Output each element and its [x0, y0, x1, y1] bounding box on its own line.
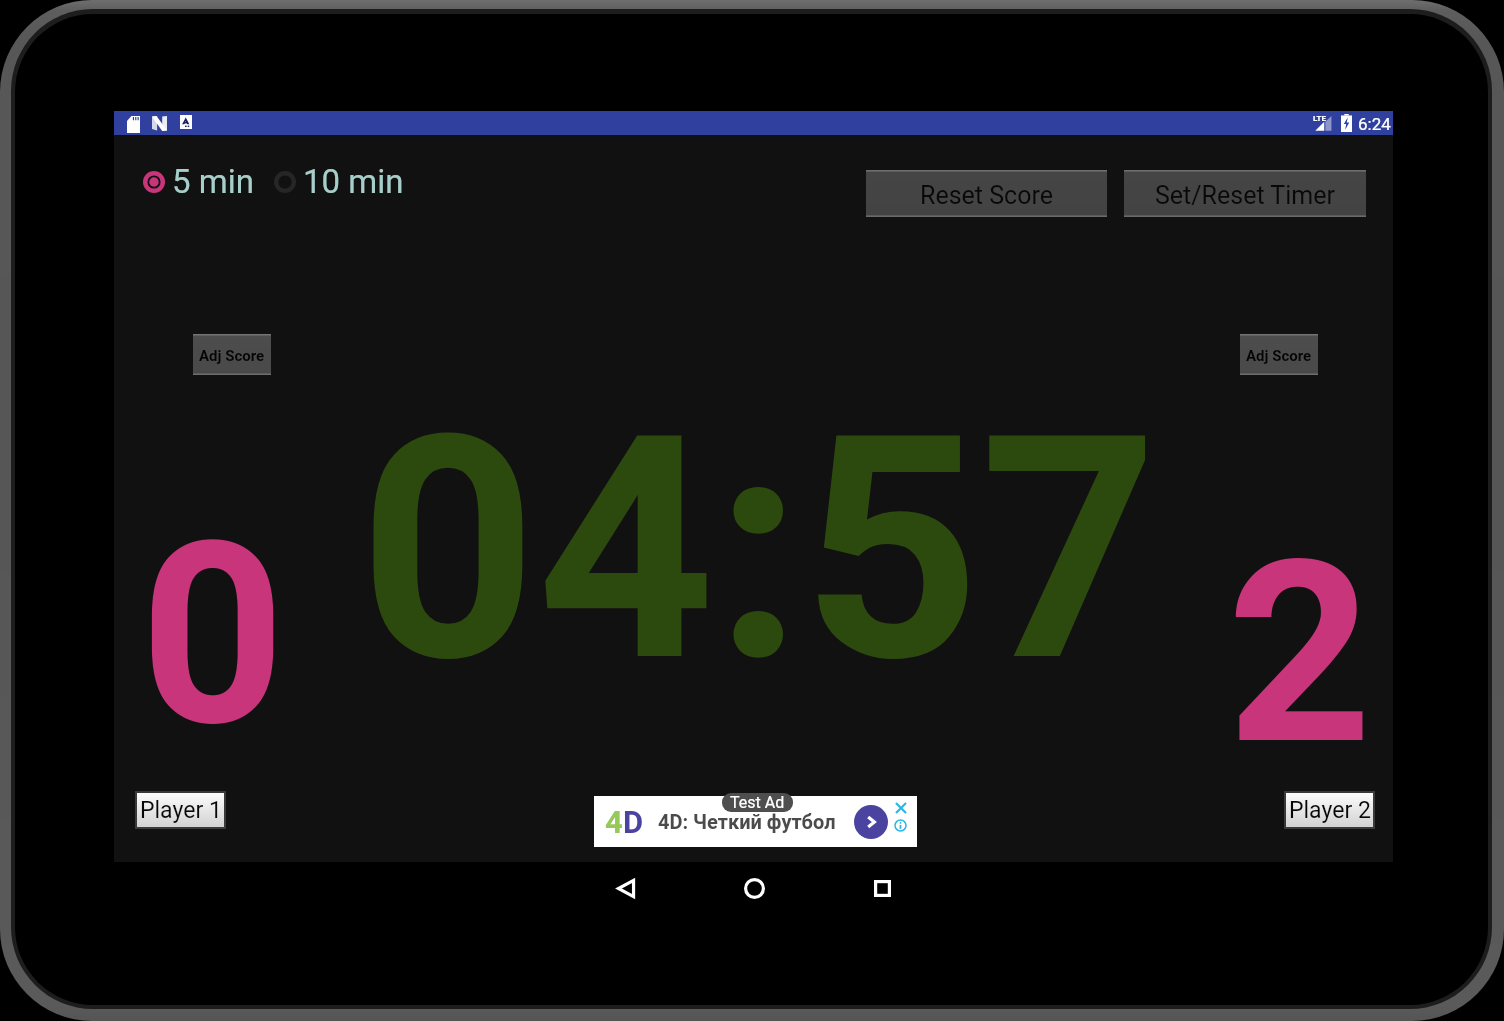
staticText: 0	[140, 487, 286, 783]
staticText: 5 min	[172, 162, 254, 201]
staticText: D	[623, 804, 644, 840]
staticText: Adj Score	[199, 347, 265, 365]
button[interactable]: Reset Score	[866, 170, 1107, 217]
button[interactable]: Back	[596, 858, 656, 918]
button[interactable]: Player 1	[137, 793, 224, 827]
button[interactable]: Close ad	[895, 802, 907, 814]
button[interactable]: Ad info	[894, 819, 907, 832]
staticText: Adj Score	[1246, 347, 1312, 365]
button[interactable]: Recents	[852, 858, 912, 918]
staticText: LTE	[1313, 114, 1326, 123]
button[interactable]: Adj Score	[193, 334, 271, 375]
staticText: 04:57	[359, 368, 1158, 731]
staticText: Set/Reset Timer	[1155, 181, 1335, 210]
staticText: 4	[605, 804, 623, 840]
button[interactable]: 5 min	[143, 162, 254, 201]
staticText: 10 min	[303, 162, 404, 201]
staticText: 4D: Четкий футбол	[658, 810, 836, 833]
staticText: Reset Score	[920, 181, 1053, 210]
staticText: Player 2	[1289, 797, 1371, 824]
staticText: 2	[1227, 505, 1373, 801]
button[interactable]: 4	[594, 796, 917, 847]
button[interactable]: 10 min	[274, 162, 404, 201]
staticText: Test Ad	[730, 793, 785, 812]
staticText: 6:24	[1358, 114, 1391, 134]
button[interactable]: Home	[724, 858, 784, 918]
button[interactable]: Set/Reset Timer	[1124, 170, 1366, 217]
staticText: Player 1	[140, 797, 222, 824]
button[interactable]: Player 2	[1286, 793, 1373, 827]
button[interactable]: Adj Score	[1240, 334, 1318, 375]
